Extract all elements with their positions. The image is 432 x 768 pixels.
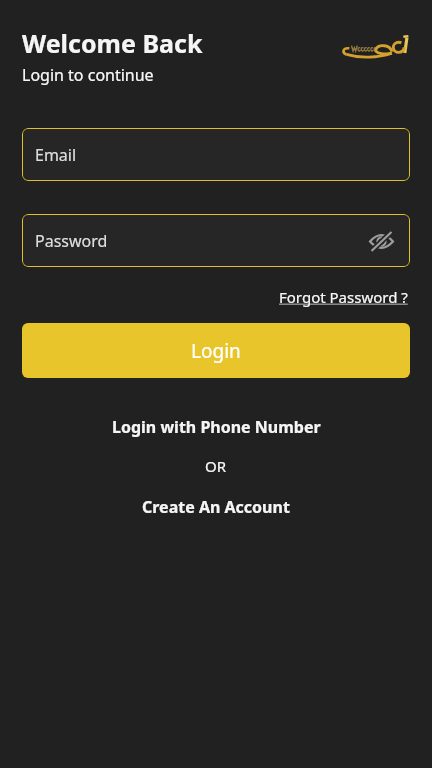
staticText: Welcome Back — [22, 26, 203, 60]
staticText: Forgot Password ? — [279, 287, 408, 307]
staticText: Password — [35, 230, 108, 252]
staticText: Login with Phone Number — [112, 416, 321, 438]
other: Wassely logo — [340, 32, 412, 66]
button[interactable]: Email — [22, 128, 410, 181]
button[interactable]: Show password — [362, 222, 400, 260]
staticText: Email — [35, 144, 77, 166]
staticText: Create An Account — [142, 496, 290, 518]
staticText: OR — [205, 456, 227, 476]
button[interactable]: Login — [22, 323, 410, 378]
button[interactable]: Create An Account — [0, 490, 432, 524]
button[interactable]: Login with Phone Number — [0, 410, 432, 444]
button[interactable]: Forgot Password ? — [277, 285, 410, 309]
staticText: Login to continue — [22, 64, 154, 86]
button[interactable]: Password — [22, 214, 410, 267]
staticText: Login — [191, 338, 241, 364]
